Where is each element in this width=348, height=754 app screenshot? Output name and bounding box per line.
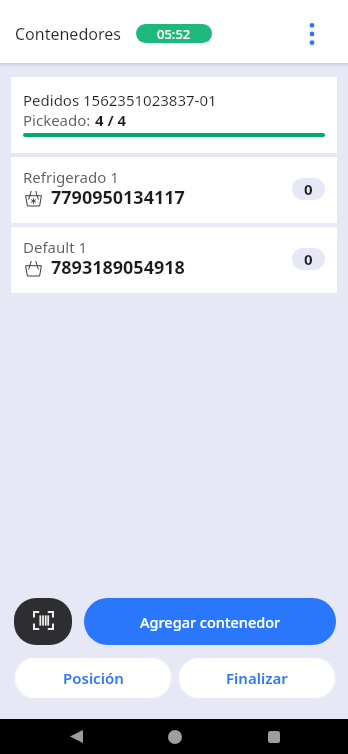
button[interactable]: Posición — [14, 657, 172, 699]
staticText: Posición — [63, 668, 124, 688]
button[interactable]: Default 1 — [11, 227, 337, 293]
staticText: 4 / 4 — [95, 110, 127, 130]
staticText: Finalizar — [226, 668, 288, 688]
button[interactable]: Refrigerado 1 — [11, 157, 337, 223]
button[interactable]: Finalizar — [178, 657, 336, 699]
staticText: 7790950134117 — [51, 185, 185, 210]
staticText: Default 1 — [23, 237, 88, 257]
staticText: Refrigerado 1 — [23, 167, 119, 187]
button[interactable]: Agregar contenedor — [84, 598, 336, 645]
staticText: 05:52 — [157, 25, 191, 43]
staticText: Contenedores — [15, 23, 121, 45]
staticText: 0 — [304, 249, 313, 269]
button[interactable]: Home — [155, 719, 195, 754]
button[interactable]: More options — [290, 12, 334, 56]
button[interactable]: Back — [56, 719, 96, 754]
staticText: 0 — [304, 179, 313, 199]
button[interactable]: Scan barcode — [14, 598, 72, 645]
staticText: Pedidos 1562351023837-01 — [23, 90, 217, 110]
staticText: 7893189054918 — [51, 255, 185, 280]
staticText: Pickeado: — [23, 110, 95, 130]
button[interactable]: Recents — [254, 719, 294, 754]
staticText: Agregar contenedor — [140, 612, 281, 632]
